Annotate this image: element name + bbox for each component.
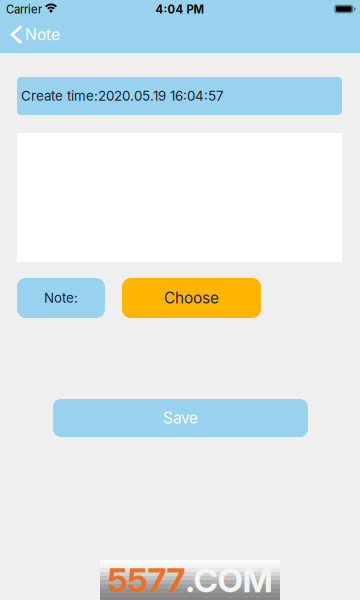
staticText: 4:04 PM xyxy=(155,3,204,16)
staticText: Carrier xyxy=(6,3,42,16)
staticText: .COM xyxy=(185,560,272,600)
button[interactable]: Note: xyxy=(17,278,105,318)
staticText: Choose xyxy=(164,289,219,307)
staticText: 5577 xyxy=(107,560,185,600)
button[interactable]: Choose xyxy=(122,278,261,318)
button[interactable]: Note xyxy=(0,19,68,50)
staticText: Note xyxy=(25,25,60,44)
button[interactable]: Save xyxy=(53,399,308,437)
staticText: Create time:2020.05.19 16:04:57 xyxy=(21,88,224,104)
staticText: Note: xyxy=(44,290,78,306)
staticText: Save xyxy=(163,409,198,427)
